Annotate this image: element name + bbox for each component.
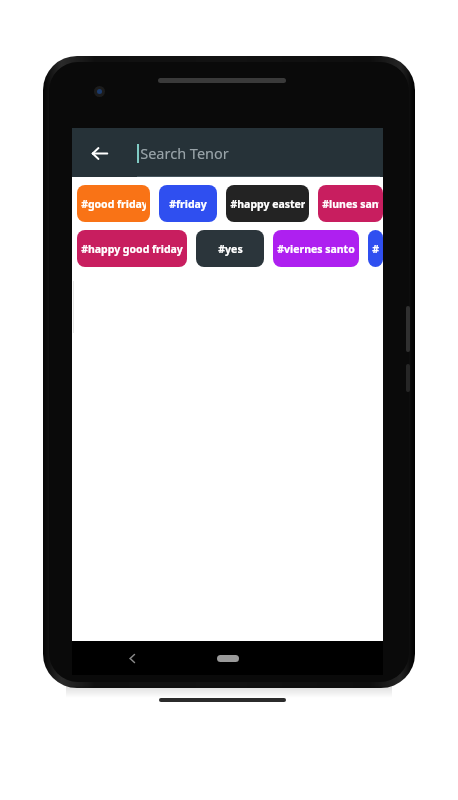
staticText: #pascua xyxy=(372,242,379,256)
staticText: Search Tenor xyxy=(140,143,229,163)
button[interactable]: Search Tenor xyxy=(137,128,383,177)
button[interactable]: #friday xyxy=(159,185,217,222)
button[interactable]: Home xyxy=(210,648,246,668)
button[interactable]: #viernes santo xyxy=(273,230,359,267)
button[interactable]: #happy good friday xyxy=(77,230,187,267)
staticText: #friday xyxy=(169,197,207,211)
button[interactable]: #lunes santo xyxy=(318,185,383,222)
staticText: #happy easter xyxy=(230,197,305,211)
button[interactable]: #good friday xyxy=(77,185,150,222)
staticText: #lunes santo xyxy=(322,197,379,211)
staticText: #viernes santo xyxy=(277,242,355,256)
staticText: #happy good friday xyxy=(81,242,183,256)
staticText: #yes xyxy=(218,242,243,256)
staticText: #good friday xyxy=(81,197,146,211)
button[interactable]: #pascua xyxy=(368,230,383,267)
button[interactable]: Back xyxy=(118,644,146,672)
button[interactable]: Navigate up xyxy=(80,134,118,172)
button[interactable]: #yes xyxy=(196,230,264,267)
button[interactable]: #happy easter xyxy=(226,185,309,222)
